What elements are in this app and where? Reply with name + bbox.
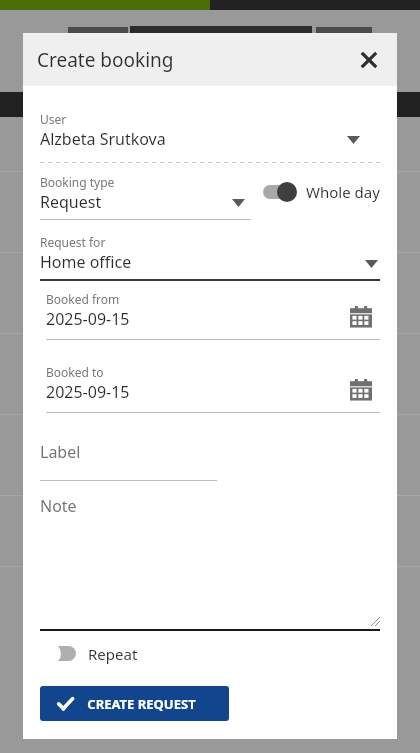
button[interactable]: User <box>40 111 380 150</box>
staticText: Home office <box>40 251 132 273</box>
staticText: User <box>40 111 67 127</box>
staticText: 2025-09-15 <box>46 381 130 403</box>
other: Pick date <box>350 306 372 328</box>
staticText: Request <box>40 191 102 213</box>
staticText: 2025-09-15 <box>46 308 130 330</box>
staticText: Alzbeta Srutkova <box>40 128 166 150</box>
staticText: Repeat <box>88 644 138 664</box>
button[interactable]: Booked from <box>40 291 380 340</box>
button[interactable]: Booked to <box>40 364 380 413</box>
button[interactable]: Close <box>355 46 383 74</box>
staticText: Booked from <box>46 291 120 307</box>
button[interactable]: Repeat <box>40 643 138 664</box>
staticText: Request for <box>40 234 106 250</box>
button[interactable]: Request for <box>40 234 380 281</box>
other: Pick date <box>350 379 372 401</box>
button[interactable]: Label <box>40 441 217 481</box>
button[interactable]: Note <box>40 495 380 631</box>
staticText: Note <box>40 495 77 517</box>
staticText: CREATE REQUEST <box>87 695 196 713</box>
staticText: Booking type <box>40 174 115 190</box>
staticText: Label <box>40 441 81 463</box>
button[interactable]: Booking type <box>40 174 251 220</box>
staticText: Booked to <box>46 364 104 380</box>
staticText: Create booking <box>37 47 174 73</box>
staticText: Whole day <box>306 182 380 202</box>
button[interactable]: CREATE REQUEST <box>40 686 229 721</box>
button[interactable]: Whole day <box>261 182 380 202</box>
